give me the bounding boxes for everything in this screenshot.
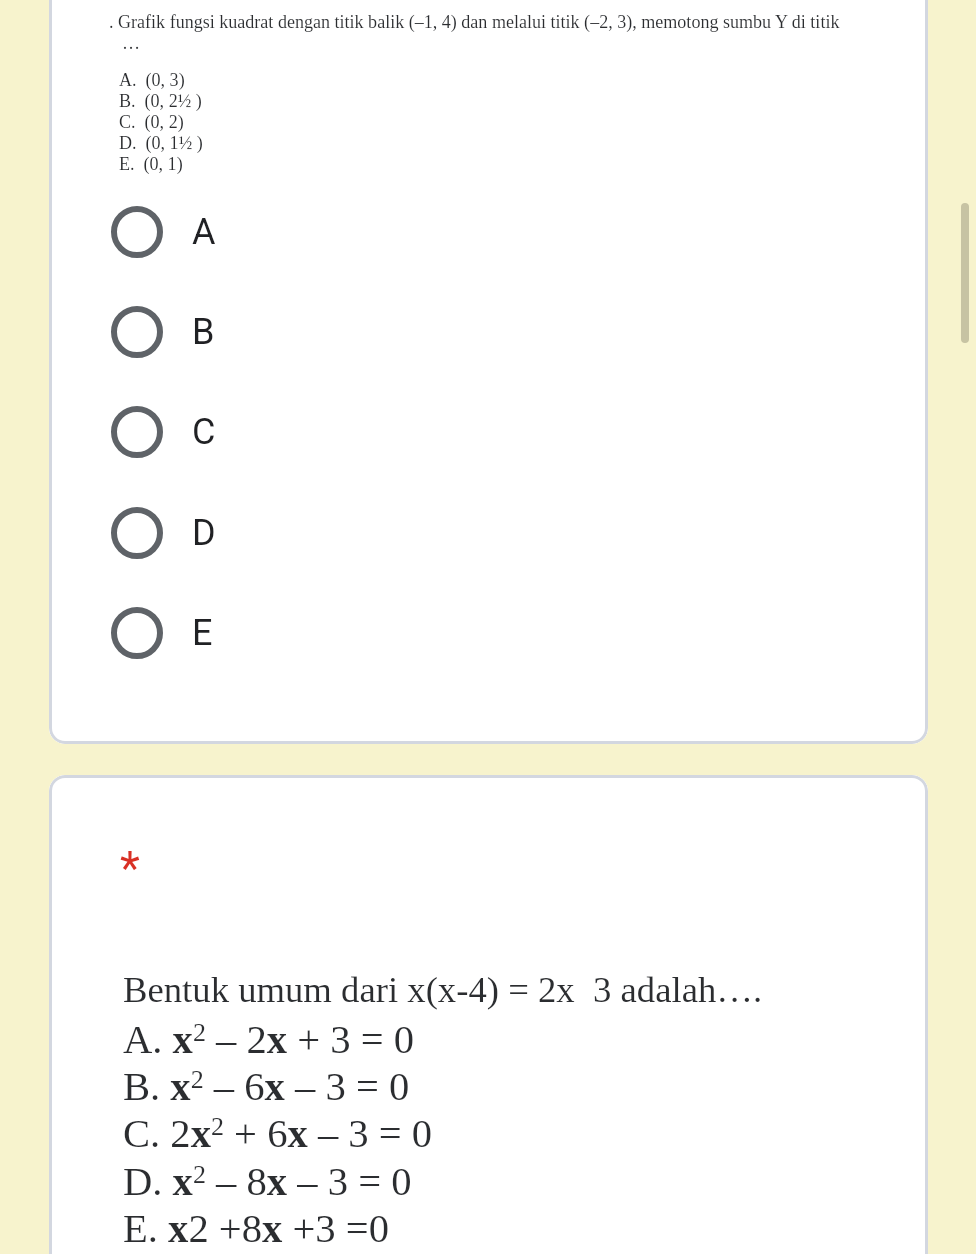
staticText: A. (0, 3) [119, 70, 185, 90]
button[interactable]: A [111, 196, 866, 268]
staticText: * [120, 841, 140, 895]
staticText: Bentuk umum dari x(x-4) = 2x 3 adalah…. [123, 969, 763, 1010]
staticText: D. x2 – 8x – 3 = 0 [123, 1159, 412, 1204]
staticText: A [192, 211, 216, 253]
other: Scroll position [961, 203, 969, 343]
staticText: . Grafik fungsi kuadrat dengan titik bal… [109, 12, 840, 32]
staticText: E. (0, 1) [119, 154, 183, 174]
staticText: … [122, 33, 141, 53]
staticText: D. (0, 1½ ) [119, 133, 203, 153]
staticText: C [192, 411, 216, 453]
button[interactable]: D [111, 497, 866, 569]
button[interactable]: B [111, 296, 866, 368]
staticText: C. (0, 2) [119, 112, 184, 132]
staticText: D [192, 512, 216, 554]
staticText: B [192, 311, 215, 353]
button[interactable]: C [111, 396, 866, 468]
staticText: B. (0, 2½ ) [119, 91, 202, 111]
staticText: E. x2 +8x +3 =0 [123, 1206, 390, 1251]
staticText: A. x2 – 2x + 3 = 0 [123, 1017, 415, 1062]
button[interactable]: E [111, 597, 866, 669]
staticText: C. 2x2 + 6x – 3 = 0 [123, 1111, 433, 1156]
staticText: B. x2 – 6x – 3 = 0 [123, 1064, 410, 1109]
staticText: E [192, 612, 213, 654]
